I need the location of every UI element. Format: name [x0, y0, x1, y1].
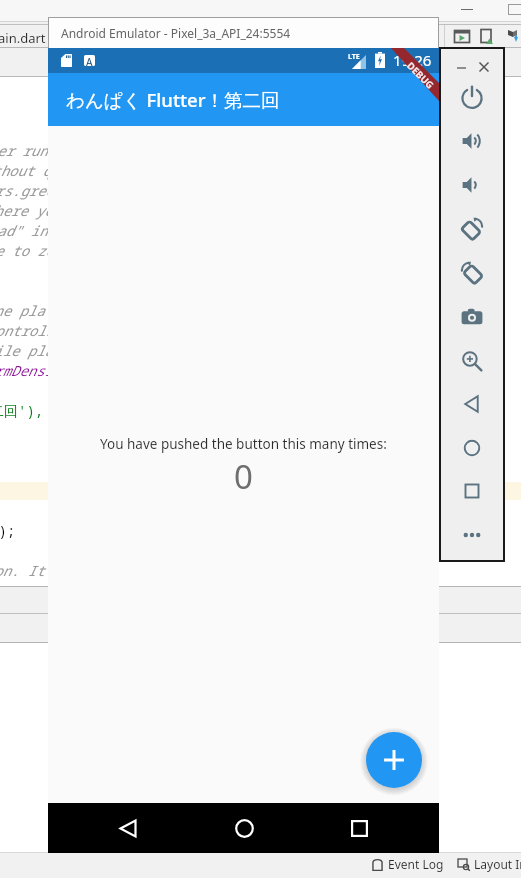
button[interactable]: Back — [450, 382, 494, 426]
staticText: thout qu — [0, 161, 60, 180]
staticText: rmDensit — [0, 361, 62, 380]
button[interactable]: Increment — [366, 732, 422, 788]
staticText: You have pushed the button this many tim… — [100, 435, 387, 453]
staticText: わんぱく Flutter！第二回 — [66, 87, 280, 112]
button[interactable]: Close — [478, 61, 490, 73]
button[interactable]: Back — [105, 805, 151, 851]
button[interactable]: Screenshot — [450, 295, 494, 339]
staticText: A — [86, 55, 93, 66]
staticText: ne platf — [0, 301, 62, 320]
staticText: 二回'), — [0, 401, 44, 420]
button[interactable]: Zoom — [450, 339, 494, 383]
button[interactable]: More — [450, 513, 494, 557]
staticText: ad" in o — [0, 221, 65, 240]
staticText: 19:26 — [393, 50, 432, 70]
button[interactable]: Power — [450, 75, 494, 119]
button[interactable]: Rotate left — [450, 207, 494, 251]
button[interactable]: Recent apps — [336, 805, 382, 851]
staticText: Layout Ins — [474, 856, 521, 872]
staticText: Event Log — [388, 856, 444, 872]
staticText: 0 — [234, 454, 253, 499]
staticText: ontrols — [0, 321, 54, 340]
staticText: e to zer — [0, 241, 63, 260]
button[interactable]: Home — [450, 426, 494, 470]
staticText: ain.dart — [0, 29, 46, 47]
button[interactable]: Volume up — [450, 119, 494, 163]
staticText: DEBUG — [404, 59, 437, 92]
staticText: here you — [0, 201, 62, 220]
staticText: on. It — [0, 561, 45, 580]
button[interactable]: Home — [221, 805, 267, 851]
staticText: ile plat — [0, 341, 62, 360]
button[interactable]: Rotate right — [450, 251, 494, 295]
button[interactable]: Volume down — [450, 163, 494, 207]
staticText: '); — [0, 521, 16, 540]
staticText: rs.green — [0, 181, 63, 200]
staticText: er run", — [0, 141, 65, 160]
staticText: Android Emulator - Pixel_3a_API_24:5554 — [61, 25, 291, 41]
button[interactable]: Overview — [450, 469, 494, 513]
staticText: LTE — [348, 52, 360, 62]
